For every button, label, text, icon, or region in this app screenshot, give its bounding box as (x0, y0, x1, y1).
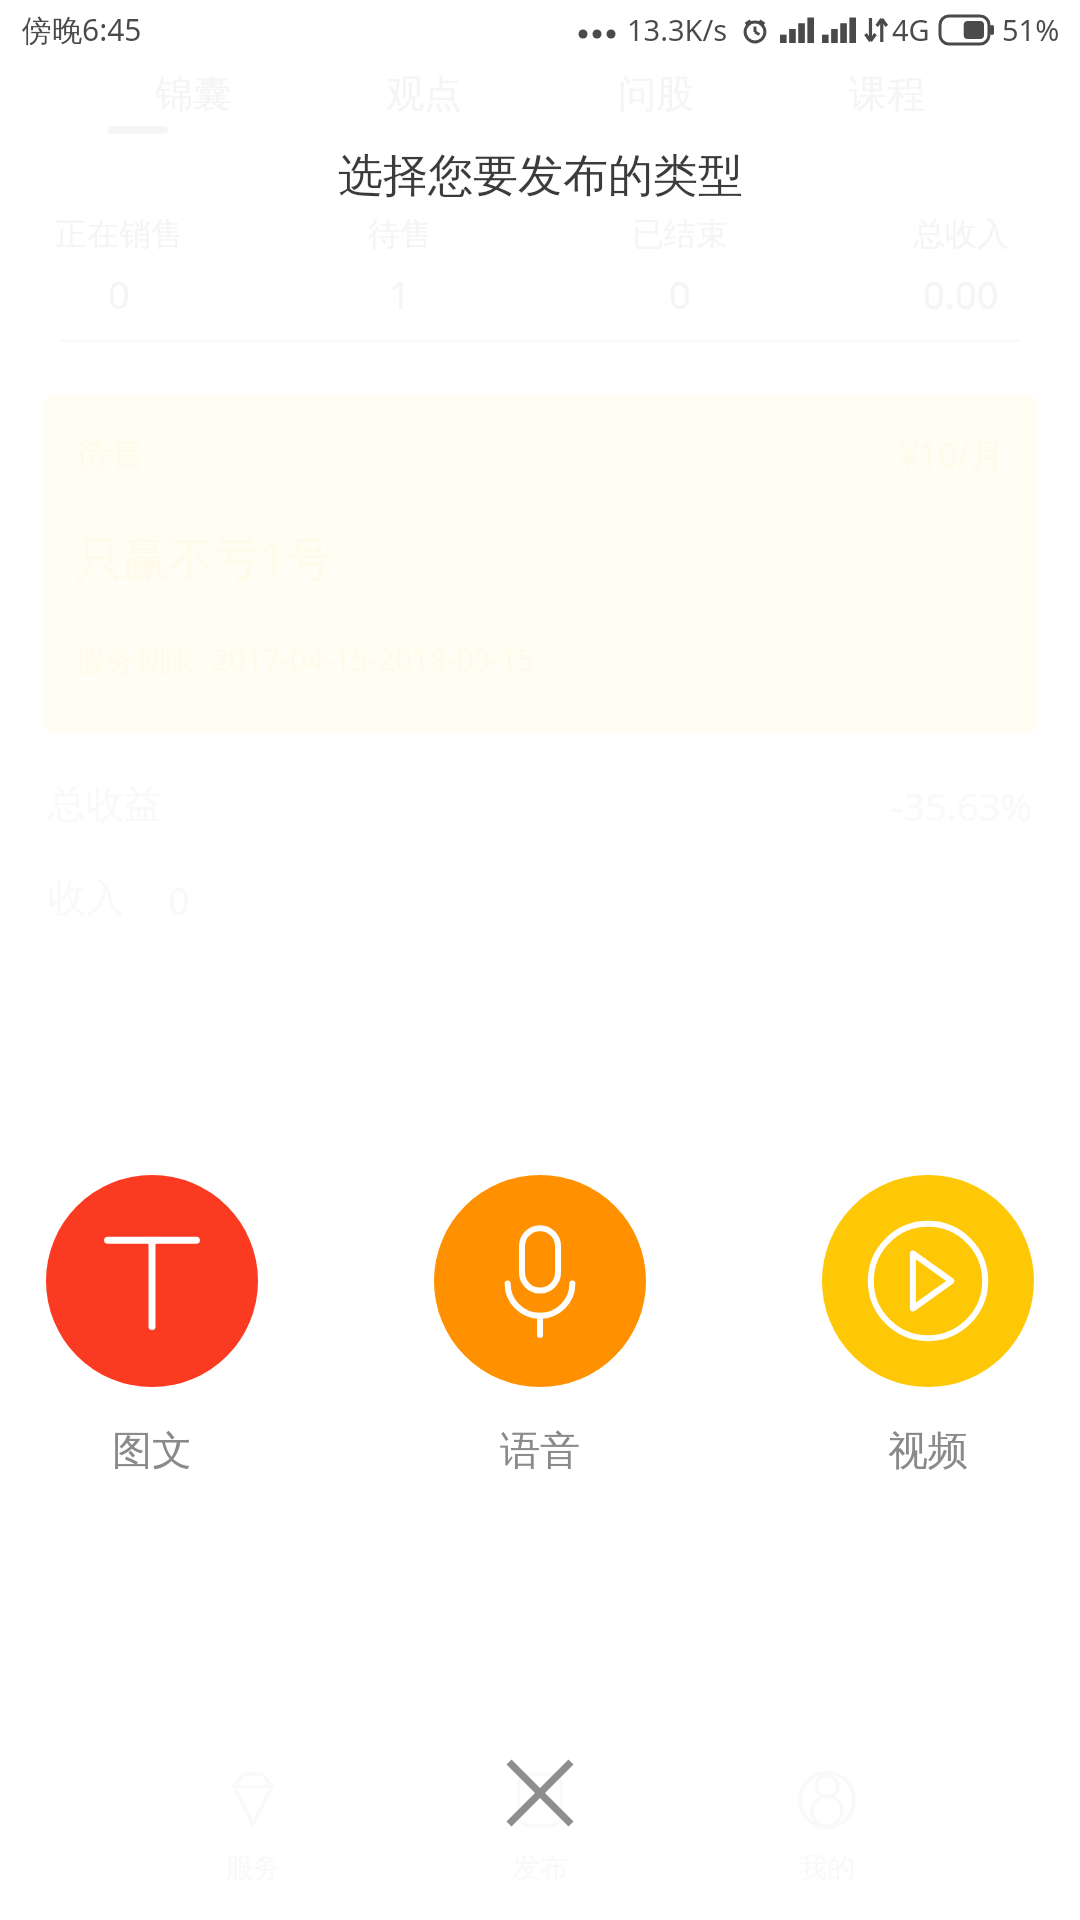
staticText: 0 (669, 268, 691, 320)
staticText: 课程 (849, 70, 925, 118)
staticText: 待售 (368, 214, 432, 254)
staticText: 已结束 (632, 214, 728, 254)
staticText: 视频 (888, 1425, 968, 1475)
staticText: 只赢不亏1号 (76, 526, 333, 589)
staticText: 0 (108, 268, 130, 320)
staticText: 总收入 (913, 214, 1009, 254)
staticText: 4G (892, 10, 930, 49)
button[interactable]: 关闭 (482, 1735, 598, 1851)
staticText: 问股 (618, 70, 694, 118)
button[interactable]: 发布图文 (46, 1175, 258, 1475)
button[interactable]: 发布语音 (434, 1175, 646, 1475)
staticText: 0.00 (923, 268, 999, 320)
staticText: 待售 (76, 432, 144, 475)
staticText: 51% (1002, 10, 1060, 49)
staticText: 观点 (386, 70, 462, 118)
button[interactable]: 发布视频 (822, 1175, 1034, 1475)
staticText: 语音 (500, 1425, 580, 1475)
staticText: 锦囊 (155, 70, 231, 118)
staticText: 选择您要发布的类型 (338, 148, 743, 205)
staticText: 图文 (112, 1425, 192, 1475)
staticText: 傍晚6:45 (22, 9, 142, 50)
staticText: 13.3K/s (627, 10, 728, 49)
staticText: 正在销售 (55, 214, 183, 254)
staticText: ¥10/月 (899, 432, 1004, 478)
staticText: 服务期限 2017-04-15-2018-09-15 (76, 639, 535, 680)
